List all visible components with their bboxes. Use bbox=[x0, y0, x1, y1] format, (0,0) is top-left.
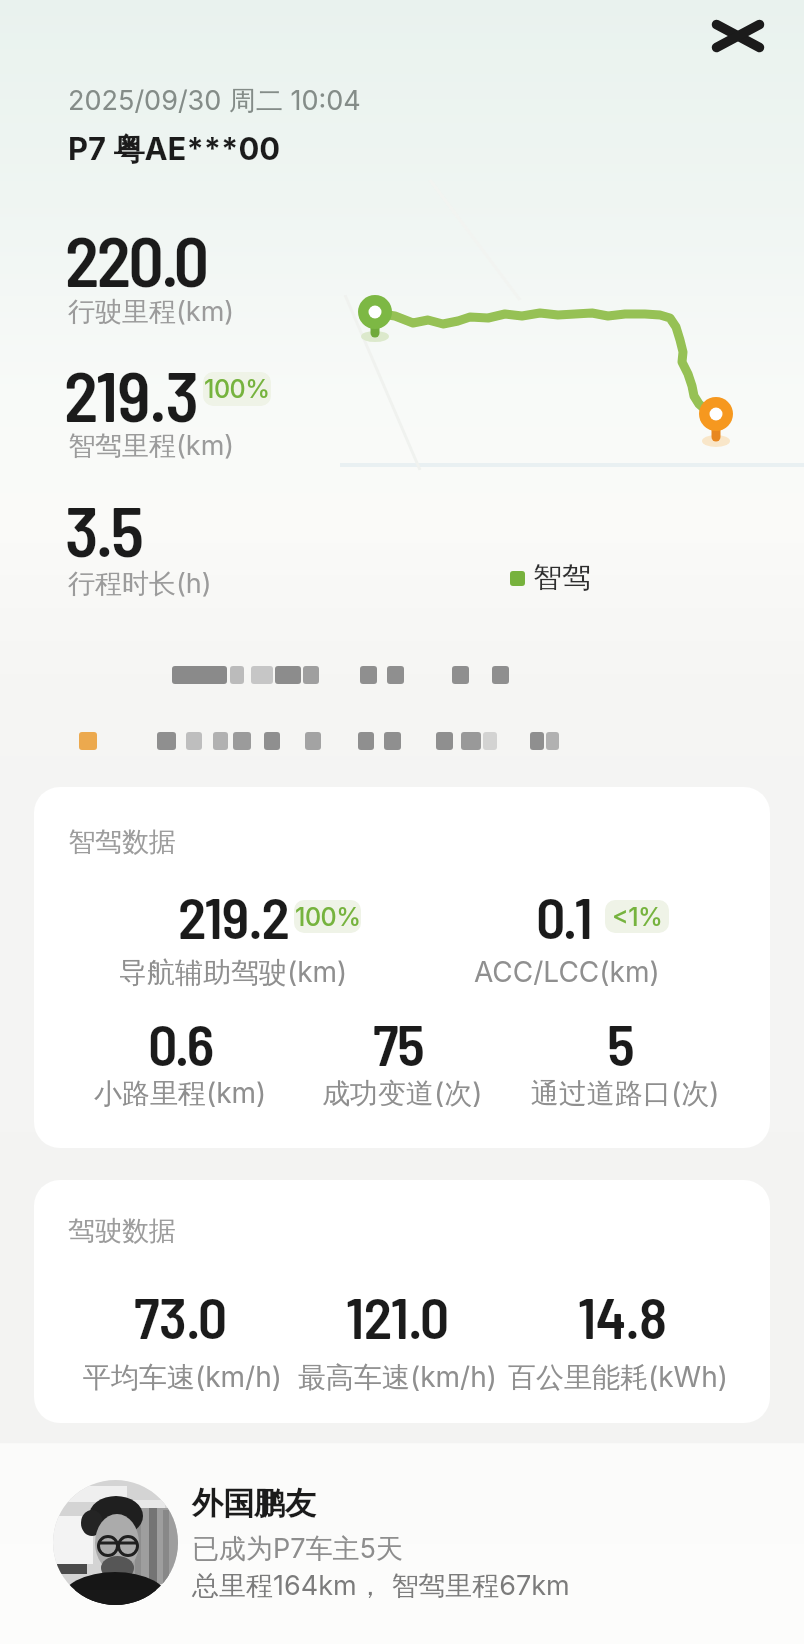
staticText: 驾驶数据 bbox=[68, 1214, 176, 1248]
staticText: 智驾里程(km) bbox=[68, 429, 235, 463]
staticText: 智驾数据 bbox=[68, 825, 176, 859]
staticText: 5 bbox=[607, 1008, 635, 1078]
staticText: <1% bbox=[612, 902, 663, 932]
staticText: 220.0 bbox=[65, 217, 207, 301]
staticText: 智驾 bbox=[533, 559, 591, 596]
staticText: 外国鹏友 bbox=[192, 1484, 316, 1523]
staticText: 2025/09/30 周二 10:04 bbox=[68, 84, 361, 118]
staticText: 121.0 bbox=[346, 1281, 449, 1351]
staticText: 219.3 bbox=[64, 352, 199, 436]
staticText: 73.0 bbox=[134, 1281, 227, 1351]
button[interactable] bbox=[700, 8, 776, 64]
staticText: 0.1 bbox=[536, 881, 591, 951]
staticText: ACC/LCC(km) bbox=[474, 955, 660, 989]
staticText: 100% bbox=[204, 374, 270, 404]
staticText: 100% bbox=[295, 902, 361, 932]
staticText: 百公里能耗(kWh) bbox=[508, 1360, 728, 1395]
staticText: 行驶里程(km) bbox=[68, 295, 235, 329]
staticText: 总里程164km， 智驾里程67km bbox=[192, 1569, 570, 1603]
staticText: 75 bbox=[373, 1008, 424, 1078]
staticText: 平均车速(km/h) bbox=[83, 1360, 282, 1395]
staticText: 最高车速(km/h) bbox=[298, 1360, 497, 1395]
staticText: 14.8 bbox=[578, 1281, 667, 1351]
staticText: 0.6 bbox=[148, 1008, 212, 1078]
staticText: 行程时长(h) bbox=[68, 567, 212, 601]
staticText: 3.5 bbox=[65, 487, 142, 571]
staticText: P7 粤AE***00 bbox=[68, 130, 281, 169]
staticText: 219.2 bbox=[178, 881, 289, 951]
button[interactable] bbox=[40, 1467, 770, 1617]
staticText: 成功变道(次) bbox=[322, 1076, 483, 1111]
staticText: 小路里程(km) bbox=[94, 1076, 267, 1111]
staticText: 通过道路口(次) bbox=[531, 1076, 720, 1111]
staticText: 导航辅助驾驶(km) bbox=[119, 955, 348, 990]
staticText: 已成为P7车主5天 bbox=[192, 1532, 403, 1566]
